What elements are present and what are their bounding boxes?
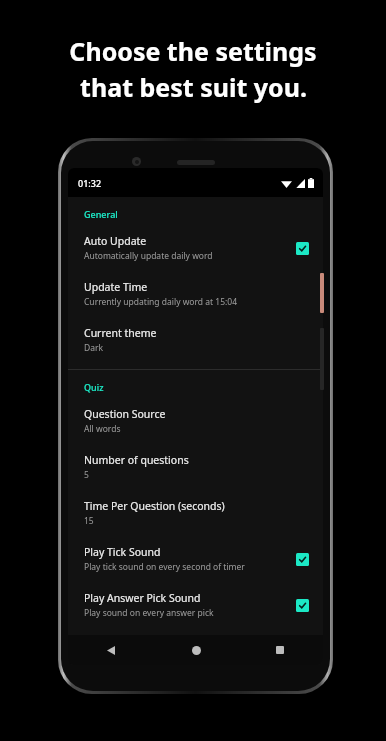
staticText: Question Source xyxy=(84,407,166,421)
button[interactable]: Back xyxy=(98,637,124,663)
button[interactable]: Question Source xyxy=(68,398,323,444)
staticText: General xyxy=(84,208,118,220)
staticText: Auto Update xyxy=(84,234,147,248)
staticText: Current theme xyxy=(84,326,157,340)
button[interactable]: Auto Update xyxy=(68,225,323,271)
staticText: Play sound on every answer pick xyxy=(84,607,214,619)
button[interactable]: Play Answer Pick Sound xyxy=(68,582,323,628)
staticText: Time Per Question (seconds) xyxy=(84,499,225,513)
button[interactable]: Home xyxy=(183,637,209,663)
staticText: Currently updating daily word at 15:04 xyxy=(84,296,238,308)
staticText: Play Tick Sound xyxy=(84,545,161,559)
staticText: Quiz xyxy=(84,381,104,393)
staticText: 01:32 xyxy=(78,177,102,189)
staticText: All words xyxy=(84,423,121,435)
staticText: Play tick sound on every second of timer xyxy=(84,561,245,573)
staticText: that best suit you. xyxy=(80,70,307,104)
button[interactable]: Time Per Question (seconds) xyxy=(68,490,323,536)
button[interactable]: Update Time xyxy=(68,271,323,317)
button[interactable]: Recent apps xyxy=(267,637,293,663)
button[interactable]: Current theme xyxy=(68,317,323,363)
staticText: 5 xyxy=(84,469,89,481)
staticText: 15 xyxy=(84,515,94,527)
staticText: Choose the settings xyxy=(69,34,317,68)
staticText: Update Time xyxy=(84,280,148,294)
staticText: Play Answer Pick Sound xyxy=(84,591,201,605)
button[interactable]: Play Tick Sound xyxy=(68,536,323,582)
staticText: Automatically update daily word xyxy=(84,250,213,262)
staticText: Number of questions xyxy=(84,453,189,467)
button[interactable]: Number of questions xyxy=(68,444,323,490)
staticText: Dark xyxy=(84,342,104,354)
